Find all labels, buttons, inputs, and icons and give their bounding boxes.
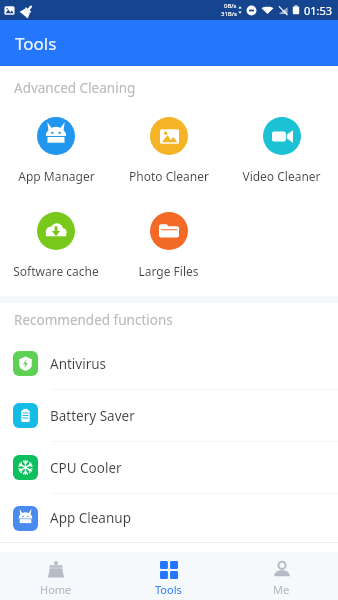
button[interactable]: Photo Cleaner [112,117,225,184]
button[interactable]: Home [0,552,112,600]
button[interactable]: Antivirus [0,338,338,389]
button[interactable]: Software cache [0,212,112,279]
staticText: App Manager [18,168,95,184]
staticText: Advanced Cleaning [14,79,136,97]
staticText: App Cleanup [50,509,131,527]
staticText: 0B/s [224,2,237,10]
staticText: 31B/s [221,10,237,18]
staticText: Software cache [13,263,99,279]
button[interactable]: Battery Saver [0,390,338,441]
staticText: Antivirus [50,355,107,373]
staticText: Photo Cleaner [129,168,209,184]
staticText: Large Files [138,263,199,279]
staticText: Battery Saver [50,407,135,425]
staticText: Home [40,582,72,597]
staticText: Recommended functions [14,311,173,329]
button[interactable]: CPU Cooler [0,442,338,493]
staticText: Tools [15,32,57,55]
staticText: CPU Cooler [50,459,122,477]
button[interactable]: App Cleanup [0,494,338,542]
staticText: 01:53 [304,3,333,18]
staticText: Tools [155,582,182,597]
button[interactable]: App Manager [0,117,112,184]
button[interactable]: Large Files [112,212,225,279]
staticText: Me [273,582,290,597]
staticText: Video Cleaner [242,168,321,184]
button[interactable]: Me [225,552,338,600]
button[interactable]: Tools [112,552,225,600]
button[interactable]: Video Cleaner [225,117,338,184]
